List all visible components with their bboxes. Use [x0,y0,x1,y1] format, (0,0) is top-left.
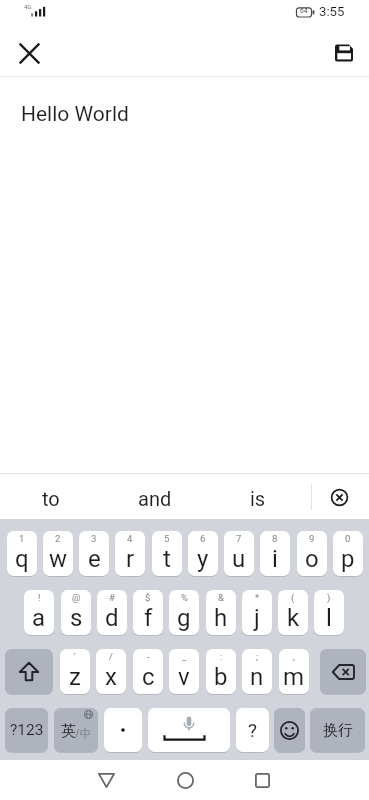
button[interactable]: ?123 [5,708,48,752]
staticText: r [126,545,135,573]
button[interactable]: ; [242,649,272,694]
staticText: 4 [127,533,133,544]
staticText: ) [327,592,331,603]
staticText: ( [291,592,295,603]
button[interactable]: ) [314,590,344,635]
button[interactable]: ' [60,649,90,694]
button[interactable]: 英 [54,708,98,752]
staticText: # [109,592,115,603]
button[interactable]: * [242,590,272,635]
button[interactable]: & [206,590,236,635]
staticText: ? [248,719,257,741]
staticText: : [220,651,223,662]
staticText: ; [256,651,259,662]
staticText: 3:55 [319,4,345,19]
staticText: l [326,604,332,632]
button[interactable]: 1 [7,531,37,576]
button[interactable] [148,708,230,752]
staticText: o [305,545,319,573]
staticText: t [163,545,171,573]
staticText: u [232,545,246,573]
staticText: 6 [200,533,206,544]
button[interactable] [274,708,305,752]
staticText: 英 [61,722,76,741]
button[interactable]: 7 [224,531,254,576]
button[interactable]: 9 [297,531,327,576]
button[interactable] [9,33,49,73]
button[interactable]: % [169,590,199,635]
button[interactable]: ( [278,590,308,635]
staticText: e [88,545,101,573]
button[interactable]: 5 [152,531,182,576]
button[interactable] [5,649,53,694]
button[interactable]: 换行 [310,708,365,752]
staticText: ' [74,651,76,662]
button[interactable]: / [96,649,126,694]
staticText: f [144,604,153,632]
button[interactable]: _ [169,649,199,694]
button[interactable]: is [228,478,288,518]
button[interactable] [320,649,366,694]
staticText: b [214,663,228,691]
staticText: & [218,592,224,603]
staticText: ! [38,592,41,603]
staticText: c [142,663,155,691]
button[interactable]: , [279,649,309,694]
staticText: n [250,663,264,691]
staticText: i [272,545,278,573]
staticText: 9 [309,533,315,544]
staticText: 4G [24,3,32,10]
staticText: , [293,651,295,662]
staticText: 5 [164,533,170,544]
button[interactable]: to [21,478,81,518]
button[interactable] [104,708,142,752]
staticText: p [341,545,355,573]
staticText: to [42,487,60,510]
staticText: h [214,604,228,632]
button[interactable]: $ [133,590,163,635]
button[interactable]: 4 [115,531,145,576]
button[interactable]: 3 [79,531,109,576]
button[interactable]: @ [61,590,91,635]
staticText: 换行 [323,721,353,740]
staticText: and [138,487,172,510]
button[interactable]: ? [236,708,269,752]
staticText: v [178,663,190,691]
button[interactable]: 0 [333,531,363,576]
staticText: /中 [75,725,92,741]
staticText: Hello World [21,102,129,127]
button[interactable]: - [133,649,163,694]
staticText: 7 [236,533,242,544]
staticText: y [197,545,209,573]
button[interactable] [86,760,126,800]
staticText: s [70,604,83,632]
staticText: - [147,651,150,662]
staticText: g [177,604,191,632]
staticText: @ [72,592,81,603]
staticText: 2 [55,533,61,544]
button[interactable] [316,477,362,517]
button[interactable]: 8 [260,531,290,576]
button[interactable]: and [125,478,185,518]
staticText: z [69,663,81,691]
staticText: / [109,651,113,662]
button[interactable]: 6 [188,531,218,576]
staticText: 0 [345,533,351,544]
button[interactable] [165,760,205,800]
button[interactable]: ! [24,590,54,635]
staticText: _ [182,651,187,662]
staticText: x [105,663,117,691]
button[interactable] [324,33,364,73]
staticText: j [254,604,260,632]
staticText: d [105,604,119,632]
staticText: * [255,592,260,603]
staticText: % [181,592,188,603]
staticText: k [287,604,300,632]
button[interactable] [242,760,282,800]
staticText: a [32,604,46,632]
button[interactable]: : [206,649,236,694]
button[interactable]: # [97,590,127,635]
staticText: ?123 [10,721,44,739]
button[interactable]: 2 [43,531,73,576]
staticText: 1 [19,533,25,544]
